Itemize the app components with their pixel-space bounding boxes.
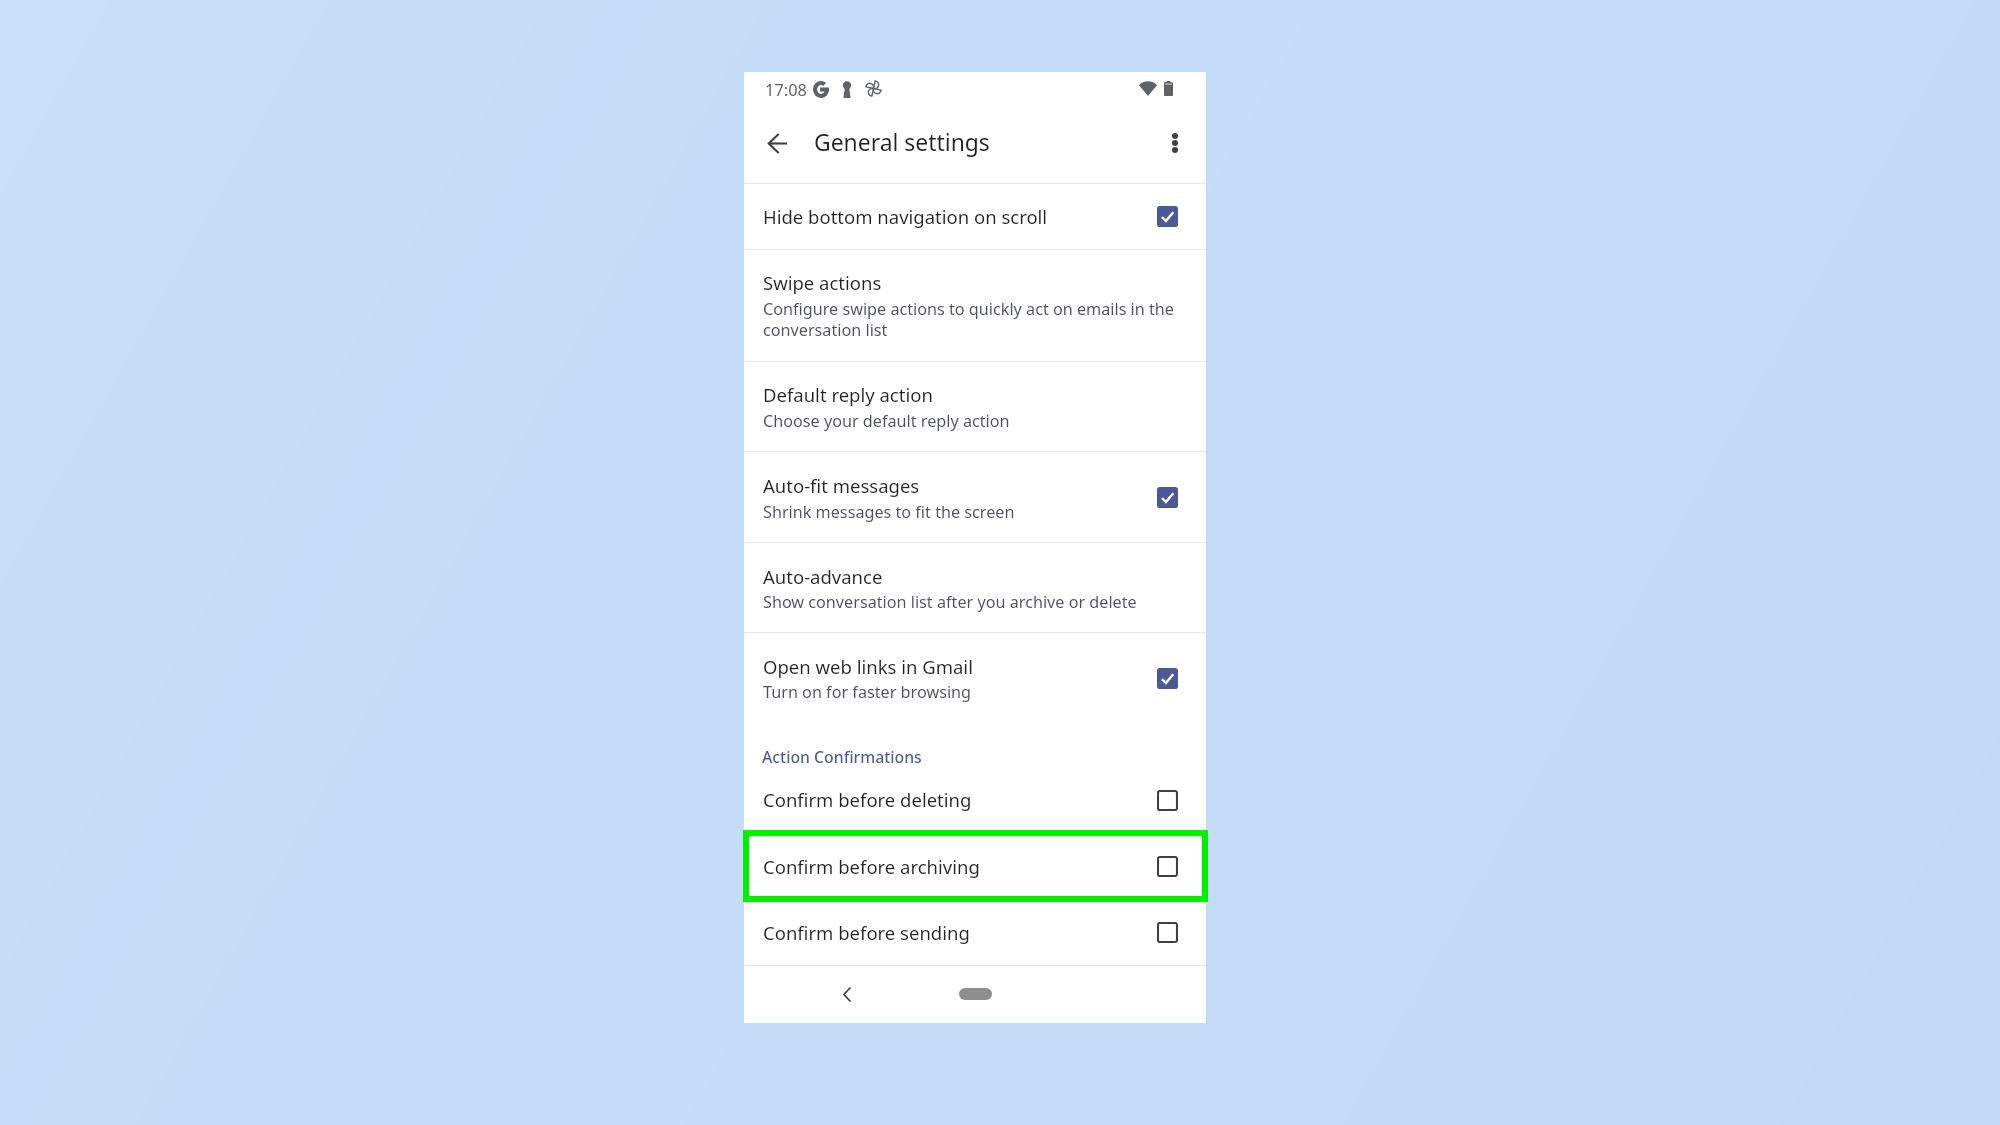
button[interactable]: Confirm before sending [744, 902, 1206, 966]
staticText: Action Confirmations [762, 746, 922, 768]
staticText: Confirm before deleting [763, 787, 972, 812]
staticText: conversation list [763, 319, 888, 341]
staticText: Choose your default reply action [763, 410, 1010, 432]
button[interactable]: Default reply action [744, 362, 1206, 452]
button[interactable]: Back [824, 972, 868, 1016]
button[interactable]: Open web links in Gmail [744, 633, 1206, 730]
staticText: Turn on for faster browsing [763, 681, 972, 703]
staticText: Confirm before archiving [763, 854, 980, 879]
staticText: Configure swipe actions to quickly act o… [763, 298, 1174, 320]
staticText: Auto-fit messages [763, 473, 920, 498]
staticText: Open web links in Gmail [763, 654, 973, 679]
button[interactable]: Auto-advance [744, 543, 1206, 633]
staticText: Hide bottom navigation on scroll [763, 204, 1048, 229]
button[interactable]: Confirm before deleting [744, 768, 1206, 831]
button[interactable]: Swipe actions [744, 250, 1206, 362]
button[interactable]: Confirm before archiving [744, 831, 1206, 902]
button[interactable]: Hide bottom navigation on scroll [744, 184, 1206, 250]
button[interactable]: Auto-fit messages [744, 452, 1206, 543]
button[interactable]: More options [1153, 121, 1197, 165]
staticText: Shrink messages to fit the screen [763, 501, 1015, 523]
button[interactable]: Navigate up [753, 119, 801, 167]
button[interactable]: Home [950, 976, 1000, 1012]
staticText: Default reply action [763, 382, 933, 407]
staticText: Auto-advance [763, 564, 883, 589]
staticText: General settings [814, 127, 990, 158]
staticText: Swipe actions [763, 270, 882, 295]
staticText: 17:08 [765, 78, 807, 100]
staticText: Show conversation list after you archive… [763, 591, 1137, 613]
staticText: Confirm before sending [763, 920, 970, 945]
